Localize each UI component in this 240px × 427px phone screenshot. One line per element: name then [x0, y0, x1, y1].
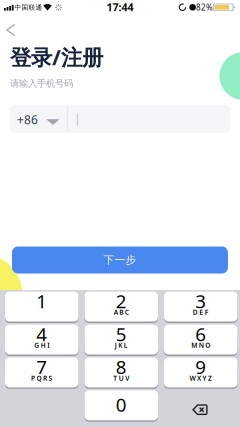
staticText: 下一步: [103, 253, 136, 266]
staticText: 0: [116, 392, 127, 417]
button[interactable]: 删除: [185, 399, 215, 421]
staticText: 4: [36, 321, 47, 346]
staticText: 3: [195, 288, 206, 313]
staticText: 82%: [196, 2, 213, 13]
button[interactable]: 5: [84, 325, 158, 355]
staticText: TUV: [113, 374, 129, 383]
button[interactable]: 3: [164, 292, 237, 322]
staticText: JKL: [115, 341, 128, 350]
staticText: 中国联通: [14, 3, 42, 12]
staticText: 17:44: [106, 0, 133, 14]
staticText: DEF: [193, 308, 209, 317]
staticText: 5: [116, 321, 127, 346]
staticText: ABC: [114, 308, 129, 317]
button[interactable]: 下一步: [12, 246, 228, 273]
staticText: 1: [36, 288, 47, 313]
staticText: PQRS: [31, 374, 52, 383]
staticText: 请输入手机号码: [10, 78, 73, 89]
staticText: 登录/注册: [10, 43, 103, 71]
button[interactable]: 0: [84, 390, 158, 420]
staticText: 2: [116, 288, 127, 313]
button[interactable]: Back: [0, 18, 24, 42]
button[interactable]: 4: [5, 325, 78, 355]
staticText: +86: [17, 111, 38, 127]
button[interactable]: 2: [84, 292, 158, 322]
staticText: WXYZ: [189, 374, 212, 383]
button[interactable]: 7: [5, 357, 78, 387]
staticText: 8: [116, 354, 127, 379]
button[interactable]: 选择国家代码 +86: [10, 105, 76, 133]
button[interactable]: 1: [5, 292, 78, 322]
staticText: 6: [195, 321, 206, 346]
staticText: 7: [36, 354, 47, 379]
button[interactable]: 6: [164, 325, 237, 355]
staticText: GHI: [34, 341, 49, 350]
button[interactable]: 9: [164, 357, 237, 387]
staticText: MNO: [191, 341, 210, 350]
button[interactable]: 8: [84, 357, 158, 387]
staticText: 9: [195, 354, 206, 379]
